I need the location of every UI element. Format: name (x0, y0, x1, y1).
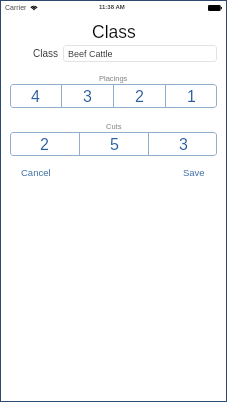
staticText: 4 (31, 88, 40, 106)
staticText: Cancel (21, 167, 51, 178)
other: Wi-Fi signal (30, 4, 38, 10)
staticText: 3 (83, 88, 92, 106)
staticText: Save (183, 167, 205, 178)
button[interactable]: Beef Cattle (63, 45, 217, 62)
button[interactable]: 3 (149, 132, 217, 156)
staticText: 1 (187, 88, 196, 106)
staticText: 2 (135, 88, 144, 106)
staticText: Beef Cattle (68, 49, 113, 59)
staticText: 2 (40, 136, 49, 154)
button[interactable]: Save (177, 162, 211, 183)
button[interactable]: Cancel (15, 162, 57, 183)
other: Battery full (208, 5, 222, 11)
staticText: Carrier (5, 4, 27, 12)
staticText: 11:38 AM (99, 4, 125, 11)
button[interactable]: 5 (80, 132, 148, 156)
staticText: Placings (99, 74, 128, 82)
button[interactable]: 2 (10, 132, 79, 156)
button[interactable]: 3 (62, 84, 113, 108)
staticText: 5 (110, 136, 119, 154)
staticText: Class (92, 22, 136, 38)
staticText: Cuts (106, 122, 122, 130)
staticText: 3 (179, 136, 188, 154)
button[interactable]: 4 (10, 84, 61, 108)
button[interactable]: 1 (166, 84, 217, 108)
staticText: Class (33, 48, 59, 59)
button[interactable]: 2 (114, 84, 165, 108)
